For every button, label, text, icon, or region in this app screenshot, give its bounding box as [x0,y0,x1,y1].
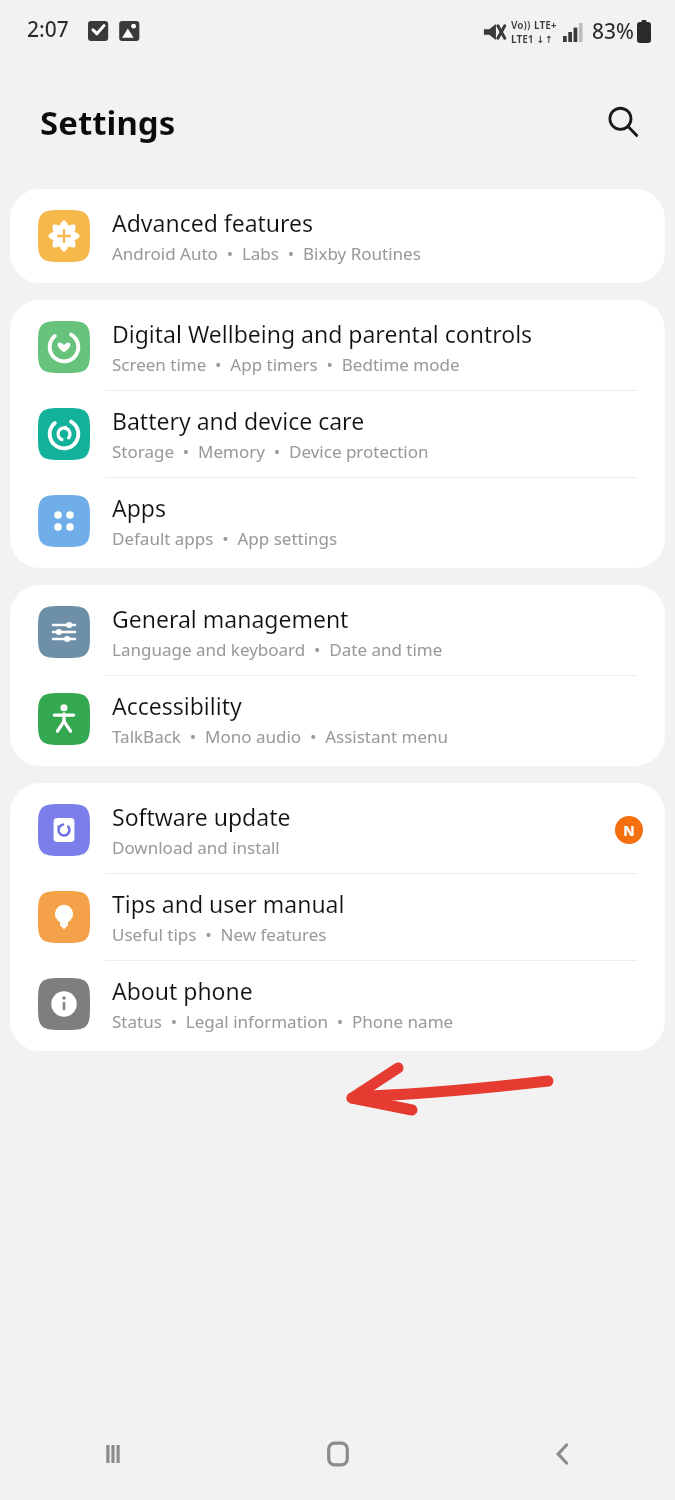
button[interactable]: Accessibility [10,676,665,766]
staticText: TalkBack • Mono audio • Assistant menu [112,725,449,748]
staticText: LTE1 [511,32,534,46]
staticText: Status • Legal information • Phone name [112,1010,454,1033]
button[interactable]: Battery and device care [10,391,665,477]
staticText: Useful tips • New features [112,923,327,946]
button[interactable]: Back [450,1408,675,1500]
button[interactable]: General management [10,585,665,675]
staticText: Default apps • App settings [112,527,338,550]
button[interactable]: Apps [10,478,665,568]
staticText: Android Auto • Labs • Bixby Routines [112,242,421,265]
staticText: Tips and user manual [112,888,345,919]
staticText: About phone [112,975,253,1006]
staticText: Download and install [112,836,280,859]
staticText: Settings [40,100,176,145]
staticText: 2:07 [27,15,69,44]
staticText: Storage • Memory • Device protection [112,440,429,463]
staticText: Accessibility [112,690,242,721]
staticText: Digital Wellbeing and parental controls [112,318,533,349]
button[interactable]: About phone [10,961,665,1051]
staticText: Battery and device care [112,405,365,436]
staticText: Screen time • App timers • Bedtime mode [112,353,460,376]
button[interactable]: Advanced features [10,189,665,283]
staticText: Language and keyboard • Date and time [112,638,443,661]
staticText: Vo)) [511,18,531,32]
button[interactable]: Tips and user manual [10,874,665,960]
button[interactable]: Search [597,96,649,148]
button[interactable]: Digital Wellbeing and parental controls [10,300,665,390]
staticText: Apps [112,492,167,523]
staticText: LTE+ [534,18,557,32]
button[interactable]: Software update [10,783,665,873]
staticText: Advanced features [112,207,314,238]
staticText: N [623,821,635,840]
staticText: ↓↑ [536,34,553,46]
staticText: 83% [592,17,634,46]
button[interactable]: Recent apps [0,1408,225,1500]
button[interactable]: Home [225,1408,450,1500]
staticText: General management [112,603,349,634]
staticText: Software update [112,801,291,832]
